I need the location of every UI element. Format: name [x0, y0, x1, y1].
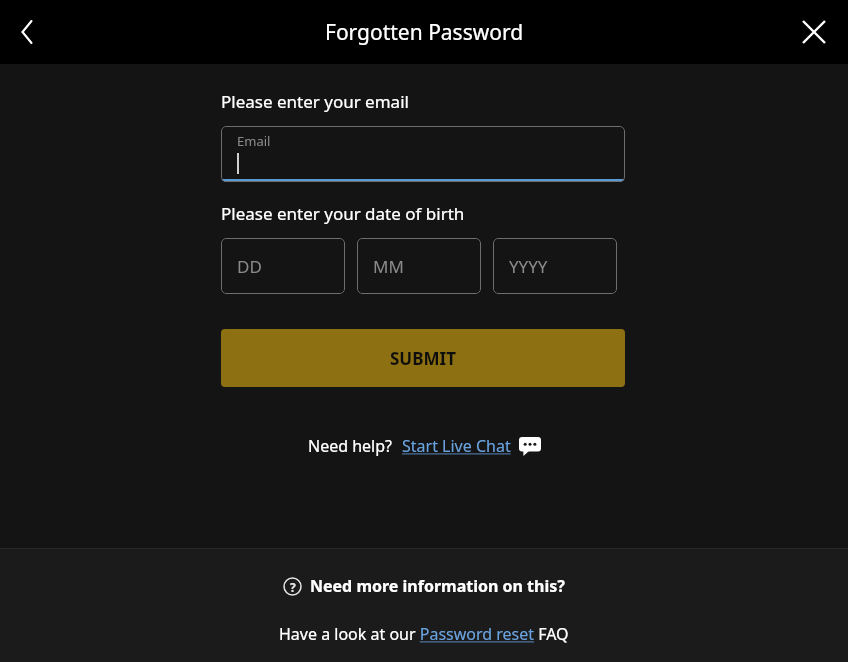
button[interactable]: Start Live Chat: [402, 435, 541, 457]
staticText: Email: [237, 132, 271, 150]
button[interactable]: Close: [792, 10, 836, 54]
button[interactable]: SUBMIT: [221, 329, 625, 387]
button[interactable]: ?: [283, 575, 565, 597]
staticText: Start Live Chat: [402, 435, 511, 457]
button[interactable]: Have a look at our Password reset FAQ: [279, 623, 569, 645]
staticText: MM: [373, 255, 404, 278]
button[interactable]: DD: [221, 238, 345, 294]
staticText: ?: [290, 579, 296, 595]
staticText: YYYY: [509, 255, 548, 278]
staticText: Please enter your email: [221, 90, 409, 113]
staticText: Please enter your date of birth: [221, 202, 465, 225]
staticText: DD: [237, 255, 262, 278]
staticText: Need help?: [308, 435, 393, 457]
staticText: Need more information on this?: [310, 575, 565, 597]
button[interactable]: Email: [221, 126, 625, 182]
staticText: Forgotten Password: [325, 18, 524, 47]
button[interactable]: Back: [6, 11, 48, 53]
button[interactable]: MM: [357, 238, 481, 294]
button[interactable]: YYYY: [493, 238, 617, 294]
staticText: SUBMIT: [390, 347, 456, 370]
